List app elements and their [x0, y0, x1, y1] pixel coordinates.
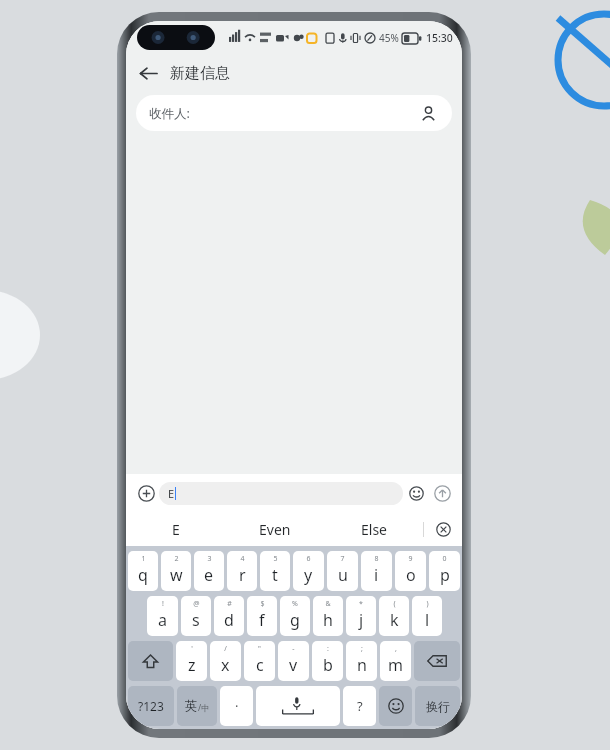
button[interactable]: Emoji	[403, 480, 429, 506]
button[interactable]: !	[147, 596, 178, 636]
staticText: Even	[259, 520, 291, 539]
staticText: :	[327, 644, 329, 654]
button[interactable]: Emoji	[379, 686, 412, 726]
button[interactable]: 3	[194, 551, 224, 591]
button[interactable]: '	[176, 641, 207, 681]
button[interactable]: Backspace	[414, 641, 460, 681]
staticText: b	[323, 654, 333, 676]
staticText: )	[426, 599, 429, 609]
staticText: 6	[306, 554, 311, 564]
button[interactable]: E	[159, 482, 403, 505]
staticText: i	[374, 564, 379, 586]
staticText: ;	[361, 644, 363, 654]
button[interactable]: 4	[227, 551, 257, 591]
staticText: u	[338, 564, 348, 586]
staticText: ,	[395, 644, 397, 654]
staticText: c	[256, 654, 264, 676]
staticText: E	[172, 520, 180, 539]
staticText: d	[224, 609, 234, 631]
staticText: 9	[408, 554, 413, 564]
button[interactable]: @	[181, 596, 211, 636]
button[interactable]: &	[313, 596, 343, 636]
staticText: ·	[235, 697, 239, 715]
staticText: 3	[207, 554, 212, 564]
button[interactable]: 英	[177, 686, 217, 726]
button[interactable]: ,	[380, 641, 411, 681]
staticText: E	[168, 486, 175, 501]
staticText: l	[425, 609, 430, 631]
button[interactable]: ·	[220, 686, 253, 726]
button[interactable]: E	[126, 512, 225, 546]
staticText: p	[440, 564, 450, 586]
button[interactable]: Even	[225, 512, 324, 546]
staticText: 0	[442, 554, 447, 564]
staticText: &	[325, 599, 331, 609]
staticText: q	[138, 564, 148, 586]
staticText: 15:30	[426, 31, 453, 45]
button[interactable]: -	[278, 641, 309, 681]
staticText: 换行	[426, 699, 450, 714]
staticText: /中	[198, 702, 210, 714]
staticText: w	[170, 564, 183, 586]
staticText: 45%	[379, 31, 399, 45]
button[interactable]: )	[412, 596, 442, 636]
button[interactable]: (	[379, 596, 409, 636]
staticText: 5	[273, 554, 278, 564]
staticText: z	[188, 654, 196, 676]
button[interactable]: :	[312, 641, 343, 681]
button[interactable]: $	[247, 596, 277, 636]
staticText: t	[272, 564, 278, 586]
staticText: 7	[340, 554, 345, 564]
button[interactable]: 换行	[415, 686, 460, 726]
button[interactable]: Space	[256, 686, 340, 726]
staticText: x	[221, 654, 230, 676]
staticText: $	[260, 599, 265, 609]
button[interactable]: 1	[128, 551, 158, 591]
staticText: ?	[357, 697, 363, 715]
staticText: 8	[374, 554, 379, 564]
button[interactable]: #	[214, 596, 244, 636]
staticText: @	[193, 599, 200, 609]
button[interactable]: Send	[429, 480, 455, 506]
staticText: 2	[174, 554, 179, 564]
button[interactable]: Add attachment	[133, 480, 159, 506]
button[interactable]: 8	[361, 551, 392, 591]
staticText: 4	[240, 554, 245, 564]
button[interactable]: ?	[343, 686, 376, 726]
staticText: *	[359, 599, 363, 609]
button[interactable]: 7	[327, 551, 358, 591]
staticText: -	[292, 644, 295, 654]
button[interactable]: "	[244, 641, 275, 681]
button[interactable]: %	[280, 596, 310, 636]
staticText: 英	[185, 698, 198, 714]
staticText: h	[323, 609, 333, 631]
button[interactable]: Shift	[128, 641, 173, 681]
button[interactable]: Back	[126, 54, 170, 92]
button[interactable]: ;	[346, 641, 377, 681]
staticText: n	[357, 654, 367, 676]
staticText: o	[406, 564, 416, 586]
staticText: a	[158, 609, 167, 631]
button[interactable]: *	[346, 596, 376, 636]
button[interactable]: 6	[293, 551, 324, 591]
button[interactable]: Close suggestions	[424, 512, 462, 546]
button[interactable]: 0	[429, 551, 460, 591]
staticText: /	[224, 644, 227, 654]
staticText: e	[204, 564, 214, 586]
staticText: (	[393, 599, 396, 609]
button[interactable]: 2	[161, 551, 191, 591]
staticText: #	[227, 599, 232, 609]
button[interactable]: /	[210, 641, 241, 681]
staticText: %	[292, 599, 298, 609]
staticText: m	[388, 654, 403, 676]
button[interactable]: Else	[324, 512, 423, 546]
button[interactable]: ?123	[128, 686, 174, 726]
staticText: v	[289, 654, 298, 676]
button[interactable]: 收件人:	[136, 95, 452, 131]
staticText: 新建信息	[170, 64, 230, 83]
staticText: 1	[141, 554, 146, 564]
staticText: y	[304, 564, 313, 586]
button[interactable]: 5	[260, 551, 290, 591]
staticText: g	[290, 609, 300, 631]
button[interactable]: 9	[395, 551, 426, 591]
